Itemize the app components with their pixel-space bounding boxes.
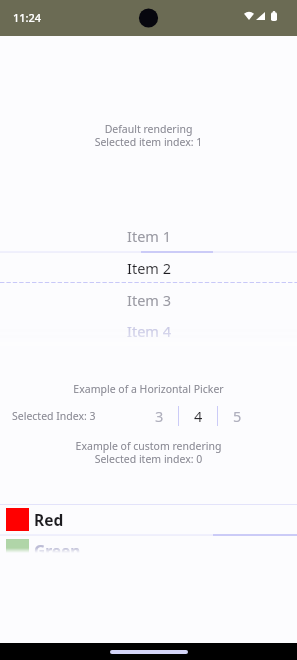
- staticText: Item 3: [127, 290, 171, 310]
- button[interactable]: Green: [0, 535, 297, 553]
- staticText: 4: [194, 406, 203, 426]
- staticText: Green: [34, 540, 81, 553]
- staticText: 3: [155, 406, 164, 426]
- button[interactable]: 5: [218, 403, 256, 429]
- staticText: 11:24: [13, 10, 42, 25]
- staticText: Red: [34, 509, 64, 530]
- button[interactable]: Red: [0, 504, 297, 535]
- staticText: 5: [233, 406, 242, 426]
- button[interactable]: 3: [140, 403, 178, 429]
- staticText: Default rendering Selected item index: 1: [0, 122, 297, 149]
- staticText: Example of custom rendering Selected ite…: [0, 439, 297, 466]
- staticText: Example of a Horizontal Picker: [0, 382, 297, 396]
- staticText: Selected Index: 3: [12, 409, 96, 423]
- staticText: Item 4: [127, 321, 171, 341]
- staticText: Item 1: [127, 226, 171, 246]
- staticText: Item 2: [127, 258, 171, 278]
- button[interactable]: Item 3: [0, 284, 297, 316]
- button[interactable]: Item 2: [0, 252, 297, 284]
- button[interactable]: 4: [179, 403, 217, 429]
- button[interactable]: Item 4: [0, 316, 297, 346]
- button[interactable]: Item 1: [0, 220, 297, 252]
